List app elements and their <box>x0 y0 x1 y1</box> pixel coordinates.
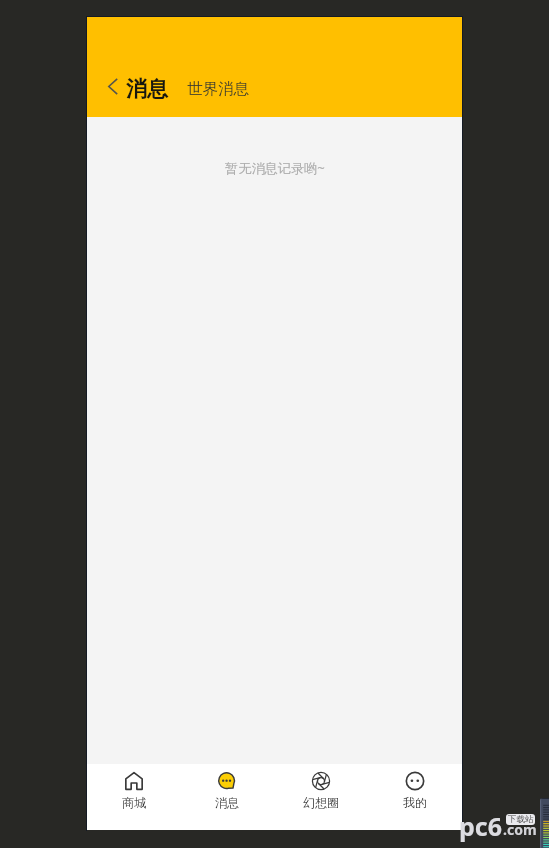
button[interactable]: 幻想圈 <box>274 764 368 830</box>
button[interactable]: 商城 <box>87 764 180 830</box>
staticText: 消息 <box>126 76 168 102</box>
staticText: 商城 <box>122 795 146 810</box>
staticText: 幻想圈 <box>303 795 339 810</box>
staticText: 暂无消息记录哟~ <box>225 159 325 177</box>
staticText: 我的 <box>403 795 427 810</box>
button[interactable]: Back <box>101 71 125 101</box>
staticText: .com <box>503 820 537 839</box>
staticText: 下载站 <box>508 814 534 825</box>
staticText: 消息 <box>215 795 239 810</box>
button[interactable]: 消息 <box>180 764 274 830</box>
button[interactable]: 我的 <box>368 764 462 830</box>
staticText: 世界消息 <box>187 79 249 99</box>
staticText: pc6 <box>459 809 503 843</box>
button[interactable]: 世界消息 <box>187 79 249 99</box>
